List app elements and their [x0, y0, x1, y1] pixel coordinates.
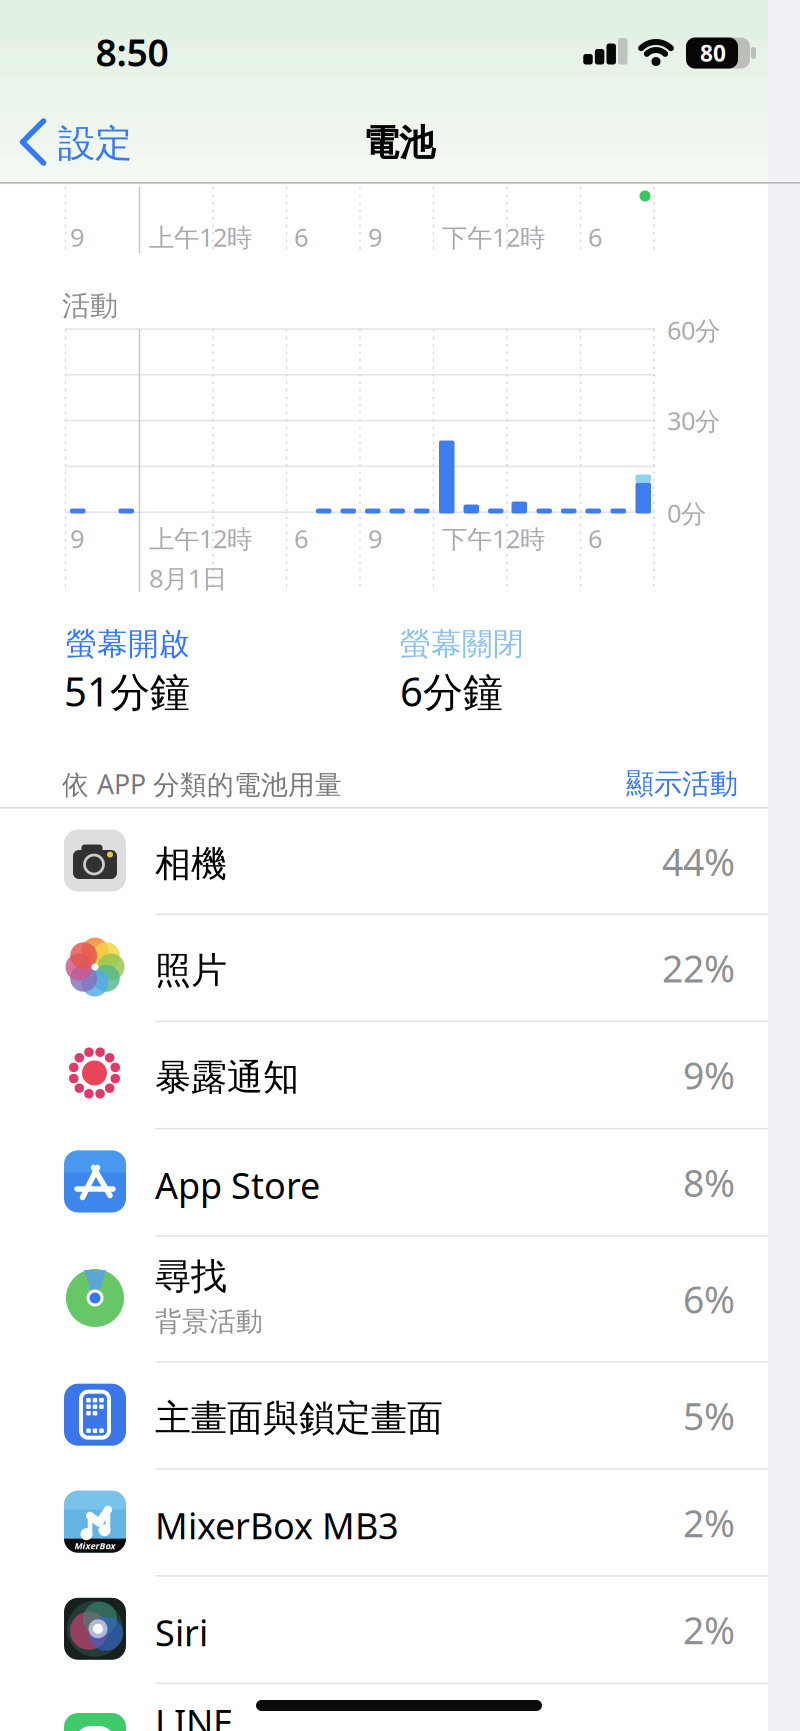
staticText: 2%: [683, 1498, 735, 1547]
button[interactable]: 主畫面與鎖定畫面: [0, 1362, 768, 1468]
staticText: 8%: [683, 1158, 735, 1207]
button[interactable]: 相機: [0, 807, 768, 913]
button[interactable]: 照片: [0, 914, 768, 1020]
staticText: 6: [588, 220, 602, 254]
staticText: 螢幕開啟: [66, 625, 190, 663]
staticText: 6%: [683, 1274, 735, 1324]
staticText: 6: [294, 220, 308, 254]
staticText: 51分鐘: [64, 664, 190, 717]
staticText: 5%: [683, 1391, 735, 1440]
staticText: 80: [700, 38, 726, 68]
staticText: 0分: [667, 496, 706, 530]
button[interactable]: 尋找: [0, 1235, 768, 1361]
staticText: 相機: [155, 842, 227, 886]
staticText: 2%: [683, 1605, 735, 1655]
staticText: 9: [70, 220, 84, 254]
staticText: 9: [368, 522, 382, 555]
staticText: 8月1日: [149, 561, 227, 595]
staticText: 暴露通知: [155, 1055, 299, 1100]
staticText: 背景活動: [155, 1305, 263, 1338]
staticText: 60分: [667, 313, 720, 347]
staticText: 尋找: [155, 1254, 227, 1299]
staticText: 9: [368, 220, 382, 254]
staticText: 6分鐘: [400, 664, 503, 717]
button[interactable]: MixerBox: [0, 1469, 768, 1575]
button[interactable]: 暴露通知: [0, 1021, 768, 1127]
staticText: 6: [588, 522, 602, 555]
staticText: 螢幕關閉: [400, 625, 524, 663]
staticText: 依 APP 分類的電池用量: [62, 766, 342, 802]
staticText: 30分: [667, 404, 720, 437]
button[interactable]: Siri: [0, 1576, 768, 1682]
staticText: 照片: [155, 948, 227, 993]
button[interactable]: 顯示活動: [602, 762, 762, 806]
staticText: 上午12時: [149, 522, 252, 555]
staticText: MixerBox: [74, 1539, 115, 1552]
staticText: Siri: [155, 1608, 208, 1656]
button[interactable]: App Store: [0, 1128, 768, 1234]
staticText: 設定: [58, 121, 132, 166]
staticText: 顯示活動: [626, 767, 738, 801]
staticText: 活動: [62, 289, 118, 323]
staticText: 44%: [662, 837, 735, 886]
staticText: 主畫面與鎖定畫面: [155, 1396, 443, 1440]
staticText: App Store: [155, 1161, 320, 1209]
staticText: 上午12時: [149, 220, 252, 254]
staticText: 9%: [683, 1050, 735, 1100]
staticText: LINE: [155, 1698, 233, 1731]
staticText: MixerBox MB3: [155, 1501, 399, 1549]
staticText: 下午12時: [442, 522, 545, 555]
staticText: 9: [70, 522, 84, 555]
staticText: 下午12時: [442, 220, 545, 254]
staticText: 電池: [363, 121, 435, 165]
staticText: 6: [294, 522, 308, 555]
staticText: 8:50: [95, 27, 168, 77]
button[interactable]: LINE: [0, 1683, 768, 1731]
staticText: 22%: [662, 943, 735, 993]
button[interactable]: 設定: [7, 115, 135, 169]
